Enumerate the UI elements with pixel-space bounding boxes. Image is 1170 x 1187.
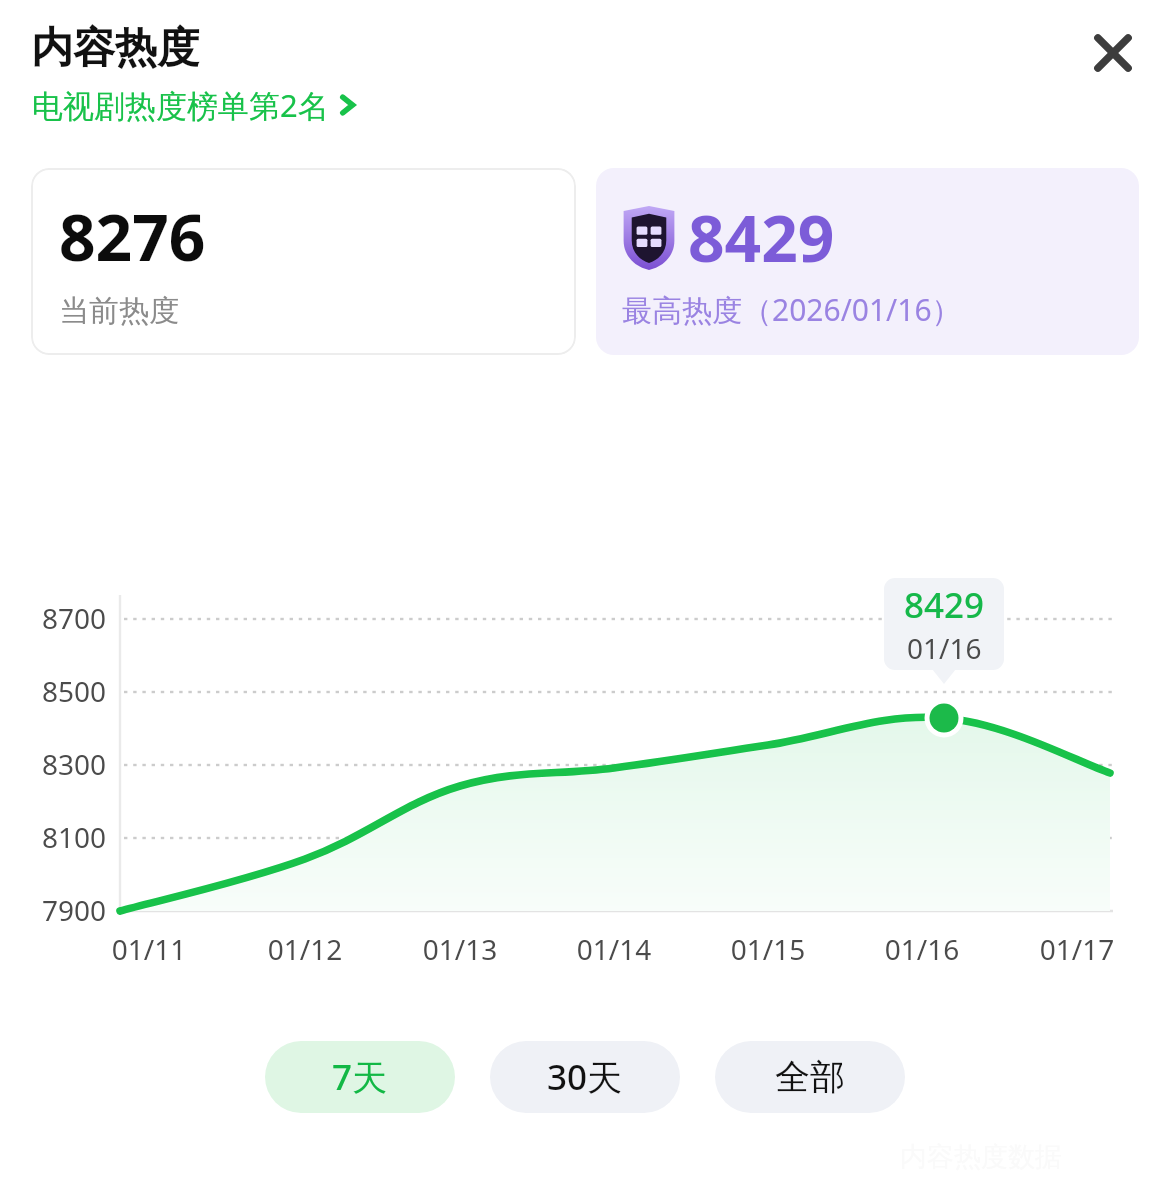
staticText: 全部: [775, 1055, 845, 1099]
staticText: 01/11: [79, 930, 219, 968]
button[interactable]: 全部: [715, 1041, 905, 1113]
button[interactable]: Close: [1079, 19, 1147, 87]
staticText: 8100: [0, 818, 106, 856]
staticText: 7900: [0, 891, 106, 929]
staticText: 最高热度（2026/01/16）: [622, 289, 962, 330]
staticText: 8429: [688, 194, 835, 281]
staticText: 内容热度: [31, 22, 199, 75]
staticText: 01/16: [852, 930, 992, 968]
button[interactable]: 电视剧热度榜单第2名: [31, 81, 357, 129]
staticText: 7天: [332, 1053, 388, 1101]
staticText: 8276: [59, 193, 206, 280]
staticText: 30天: [547, 1053, 623, 1101]
staticText: 01/15: [698, 930, 838, 968]
staticText: 01/16: [907, 629, 982, 667]
button[interactable]: 8276: [31, 168, 576, 355]
staticText: 电视剧热度榜单第2名: [32, 84, 329, 126]
staticText: 01/17: [1007, 930, 1147, 968]
staticText: 8500: [0, 672, 106, 710]
staticText: 01/12: [235, 930, 375, 968]
staticText: 8300: [0, 745, 106, 783]
staticText: 01/13: [390, 930, 530, 968]
button[interactable]: 30天: [490, 1041, 680, 1113]
staticText: 8429: [904, 581, 985, 629]
button[interactable]: 8429: [596, 168, 1139, 355]
staticText: 8700: [0, 599, 106, 637]
button[interactable]: 7天: [265, 1041, 455, 1113]
staticText: 01/14: [544, 930, 684, 968]
staticText: 当前热度: [59, 292, 179, 330]
